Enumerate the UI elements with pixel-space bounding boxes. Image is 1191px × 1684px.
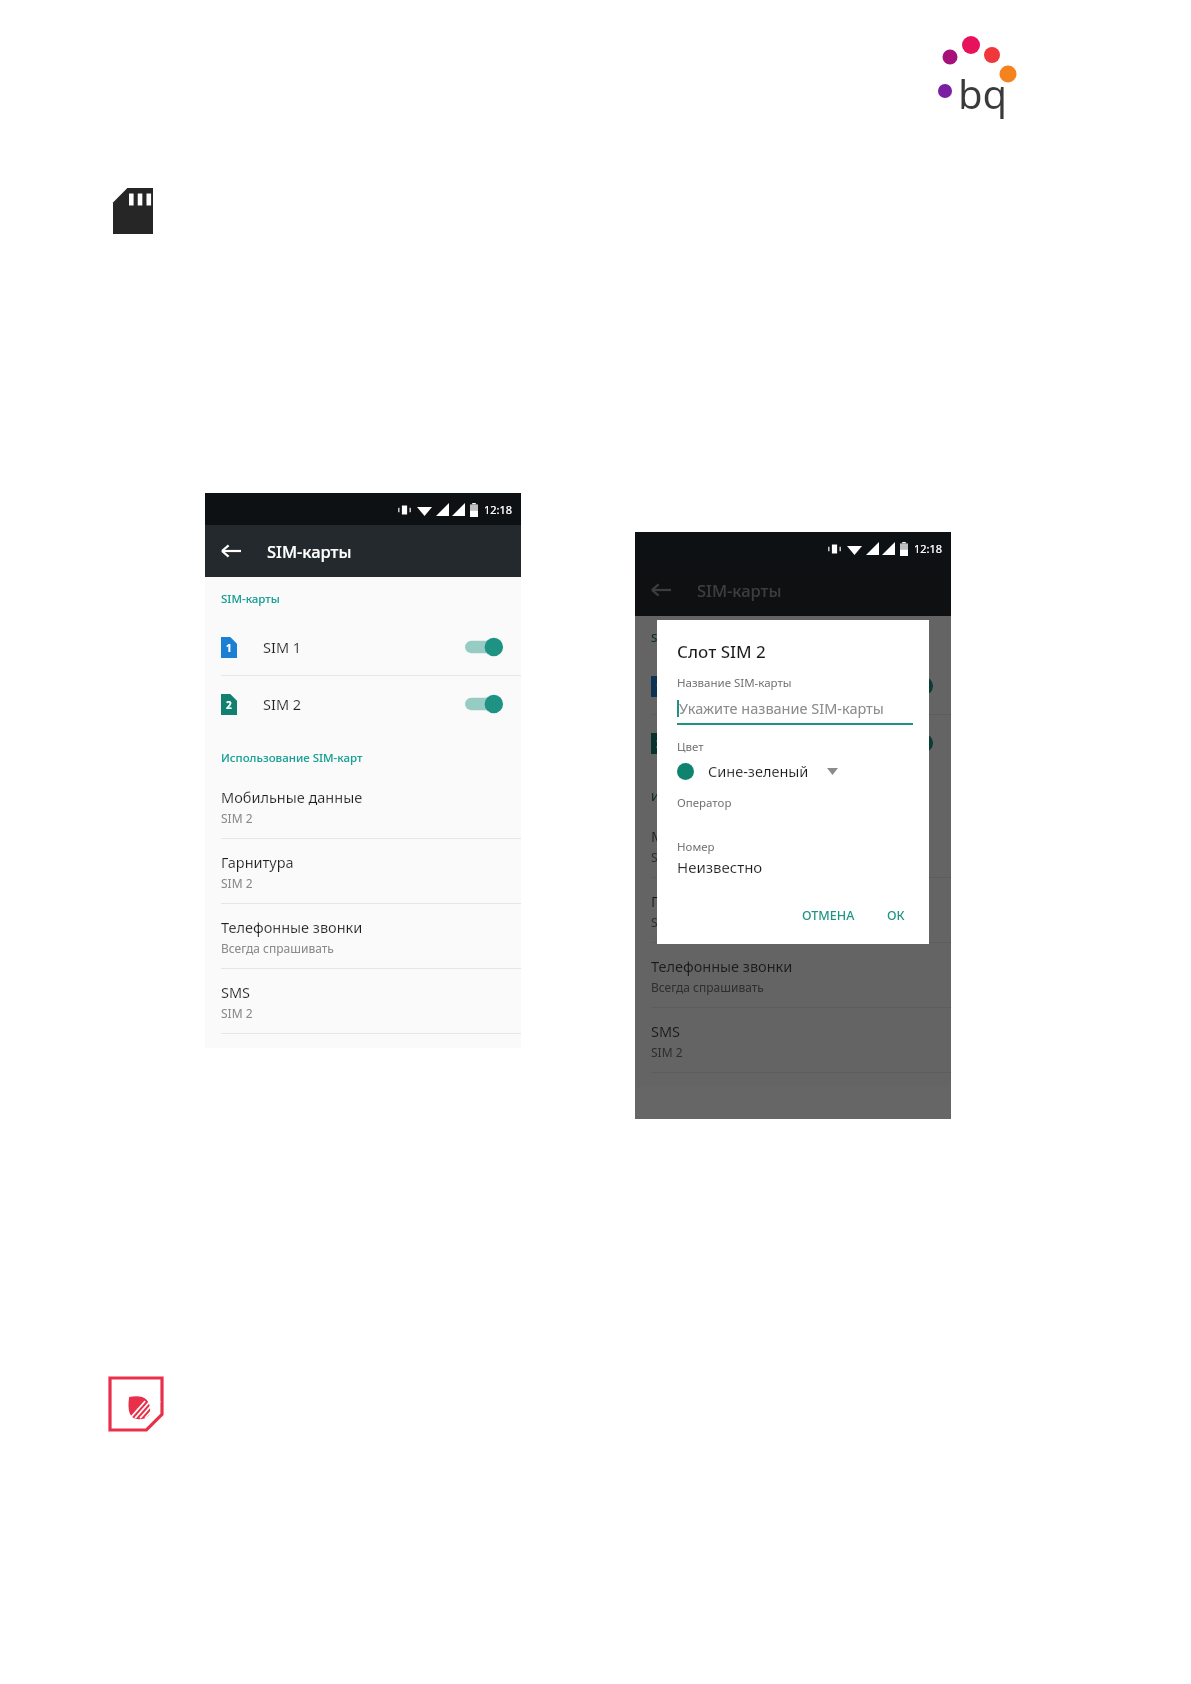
staticText: SIM-карты <box>267 540 352 562</box>
button[interactable]: SMS <box>205 969 521 1033</box>
button[interactable]: Мобильные данные <box>635 813 951 877</box>
staticText: SIM 2 <box>221 1005 253 1021</box>
staticText: 12:18 <box>914 541 943 556</box>
button[interactable]: ОК <box>879 899 913 932</box>
button[interactable]: 1 <box>635 658 951 714</box>
button[interactable]: ОТМЕНА <box>794 899 863 932</box>
staticText: SIM-карты <box>697 579 782 601</box>
staticText: SIM 2 <box>651 914 683 930</box>
staticText: SIM-карты <box>651 630 710 646</box>
staticText: Сине-зеленый <box>708 761 809 781</box>
staticText: Слот SIM 2 <box>677 640 766 663</box>
staticText: ОТМЕНА <box>802 907 855 924</box>
button[interactable]: Гарнитура <box>205 839 521 903</box>
staticText: SIM 2 <box>693 733 732 753</box>
button[interactable]: Гарнитура <box>635 878 951 942</box>
button[interactable]: Телефонные звонки <box>635 943 951 1007</box>
button[interactable]: SMS <box>635 1008 951 1072</box>
button[interactable]: 2 <box>205 676 521 732</box>
button[interactable]: Back <box>205 525 257 577</box>
staticText: SMS <box>221 982 251 1002</box>
button[interactable]: Телефонные звонки <box>205 904 521 968</box>
staticText: 12:18 <box>484 502 513 517</box>
button[interactable]: Toggle SIM 1 <box>465 636 505 658</box>
staticText: 1 <box>226 641 232 655</box>
staticText: SMS <box>651 1021 681 1041</box>
staticText: SIM 2 <box>221 875 253 891</box>
staticText: Использование SIM-карт <box>221 750 363 766</box>
button[interactable]: Сине-зеленый <box>677 761 913 781</box>
staticText: Мобильные данные <box>221 787 363 807</box>
button[interactable]: Укажите название SIM-карты <box>677 698 913 718</box>
staticText: Всегда спрашивать <box>651 979 764 995</box>
staticText: SIM-карты <box>221 591 280 607</box>
button[interactable]: Мобильные данные <box>205 774 521 838</box>
staticText: Оператор <box>677 795 732 811</box>
staticText: Телефонные звонки <box>651 956 793 976</box>
staticText: SIM 2 <box>221 810 253 826</box>
staticText: SIM 2 <box>651 849 683 865</box>
staticText: Неизвестно <box>677 857 763 877</box>
button[interactable]: Back <box>635 564 687 616</box>
staticText: Номер <box>677 839 715 855</box>
staticText: Телефонные звонки <box>221 917 363 937</box>
staticText: SIM 1 <box>263 637 302 657</box>
staticText: Гарнитура <box>651 891 724 911</box>
staticText: Гарнитура <box>221 852 294 872</box>
staticText: ОК <box>887 907 905 924</box>
staticText: SIM 2 <box>263 694 302 714</box>
staticText: Всегда спрашивать <box>221 940 334 956</box>
staticText: Использование SIM-карт <box>651 789 793 805</box>
staticText: Мобильные данные <box>651 826 793 846</box>
button[interactable]: 2 <box>635 715 951 771</box>
staticText: Название SIM-карты <box>677 675 792 691</box>
button[interactable]: Toggle SIM 1 <box>895 675 935 697</box>
staticText: SIM 1 <box>693 676 732 696</box>
staticText: 2 <box>656 737 662 751</box>
staticText: SIM 2 <box>651 1044 683 1060</box>
staticText: Цвет <box>677 739 704 755</box>
staticText: Укажите название SIM-карты <box>679 698 884 718</box>
button[interactable]: Toggle SIM 2 <box>895 732 935 754</box>
button[interactable]: 1 <box>205 619 521 675</box>
staticText: bq <box>958 66 1008 120</box>
staticText: 2 <box>226 698 232 712</box>
button[interactable]: Toggle SIM 2 <box>465 693 505 715</box>
staticText: 1 <box>656 680 662 694</box>
